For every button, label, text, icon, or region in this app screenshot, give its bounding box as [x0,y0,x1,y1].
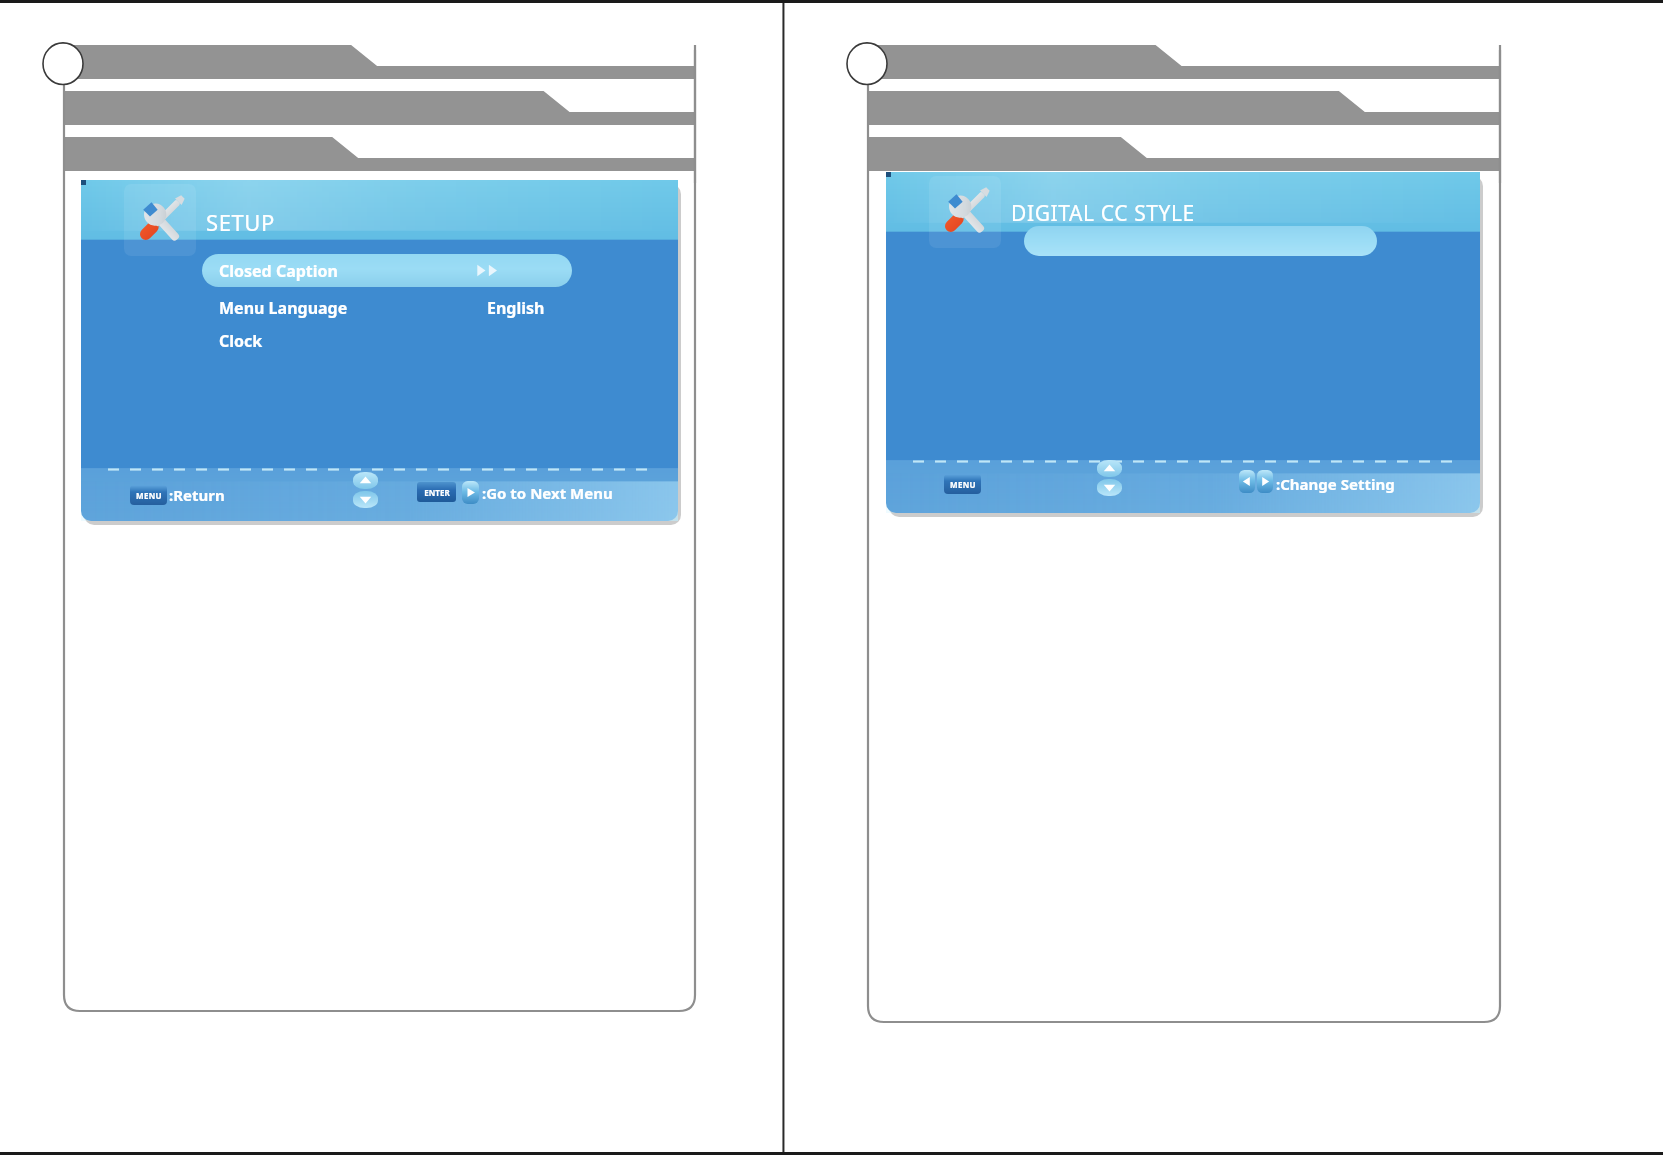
button[interactable]: Navigate up or down [353,472,378,508]
staticText: ENTER [424,487,450,498]
button[interactable]: Left [1239,470,1255,493]
staticText: MENU [136,490,162,501]
staticText: :Change Setting [1276,474,1395,494]
staticText: Clock [219,330,263,352]
staticText: Closed Caption [219,260,338,282]
button[interactable] [1024,226,1377,256]
staticText: Menu Language [219,297,348,319]
other: Open Closed Caption submenu [474,262,507,279]
staticText: :Return [169,485,225,505]
button[interactable]: Clock [202,325,572,356]
button[interactable]: MENU [130,485,167,505]
button[interactable]: Closed Caption [202,254,572,287]
button[interactable]: Right [1257,470,1273,493]
staticText: SETUP [206,207,275,237]
staticText: English [487,297,545,319]
button[interactable]: Navigate up or down [1097,460,1122,496]
staticText: MENU [950,479,976,490]
button[interactable]: MENU [944,474,981,494]
staticText: DIGITAL CC STYLE [1011,199,1195,228]
button[interactable]: Menu Language [202,292,572,323]
staticText: :Go to Next Menu [482,483,613,503]
button[interactable]: ENTER [417,482,456,502]
button[interactable]: Right [462,481,479,504]
